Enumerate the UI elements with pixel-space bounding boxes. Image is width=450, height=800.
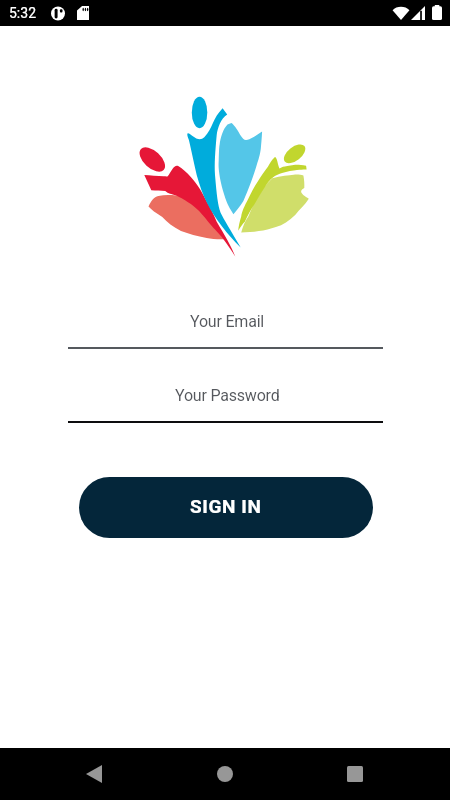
staticText: Your Password [175, 386, 280, 405]
button[interactable]: Back [70, 750, 118, 798]
button[interactable]: Your Password [68, 375, 383, 423]
button[interactable]: Recent apps [331, 750, 379, 798]
button[interactable]: Home [201, 750, 249, 798]
staticText: SIGN IN [190, 495, 262, 517]
staticText: 5:32 [9, 5, 36, 21]
button[interactable]: Your Email [68, 301, 383, 349]
button[interactable]: SIGN IN [79, 477, 373, 538]
staticText: Your Email [190, 312, 265, 331]
